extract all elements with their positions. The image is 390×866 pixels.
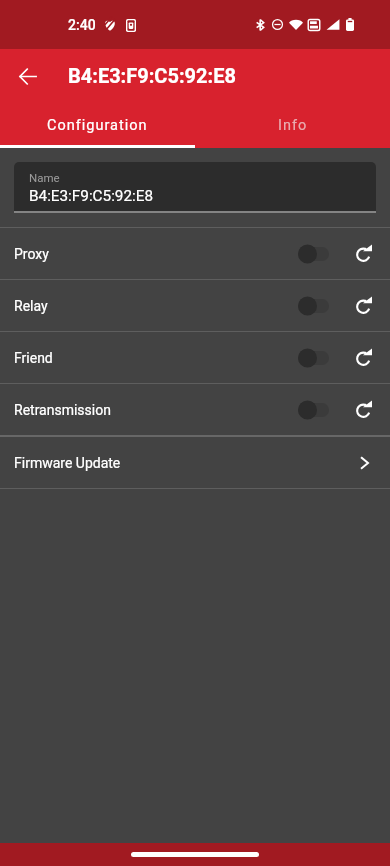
staticText: Firmware Update <box>14 455 356 471</box>
staticText: Friend <box>14 350 293 366</box>
button[interactable]: Refresh Friend <box>347 341 381 375</box>
button[interactable]: Firmware Update <box>0 437 390 488</box>
button[interactable]: Retransmission <box>0 384 390 435</box>
staticText: B4:E3:F9:C5:92:E8 <box>29 187 154 205</box>
button[interactable]: Retransmission toggle <box>293 393 333 427</box>
button[interactable]: Info <box>195 102 390 148</box>
staticText: Name <box>29 171 60 184</box>
button[interactable]: Refresh Retransmission <box>347 393 381 427</box>
staticText: Info <box>278 117 308 134</box>
button[interactable]: Refresh Relay <box>347 289 381 323</box>
staticText: Configuration <box>47 117 148 134</box>
button[interactable]: Proxy toggle <box>293 237 333 271</box>
button[interactable]: Proxy <box>0 228 390 279</box>
button[interactable]: Relay toggle <box>293 289 333 323</box>
staticText: B4:E3:F9:C5:92:E8 <box>68 64 236 87</box>
button[interactable]: Refresh Proxy <box>347 237 381 271</box>
button[interactable]: Friend <box>0 332 390 383</box>
button[interactable]: Relay <box>0 280 390 331</box>
button[interactable]: Configuration <box>0 102 195 148</box>
button[interactable]: Back <box>10 58 46 94</box>
staticText: Relay <box>14 298 293 314</box>
staticText: 2:40 <box>68 17 96 33</box>
staticText: Proxy <box>14 246 293 262</box>
staticText: Retransmission <box>14 402 293 418</box>
button[interactable]: Friend toggle <box>293 341 333 375</box>
button[interactable]: Name <box>14 162 376 211</box>
